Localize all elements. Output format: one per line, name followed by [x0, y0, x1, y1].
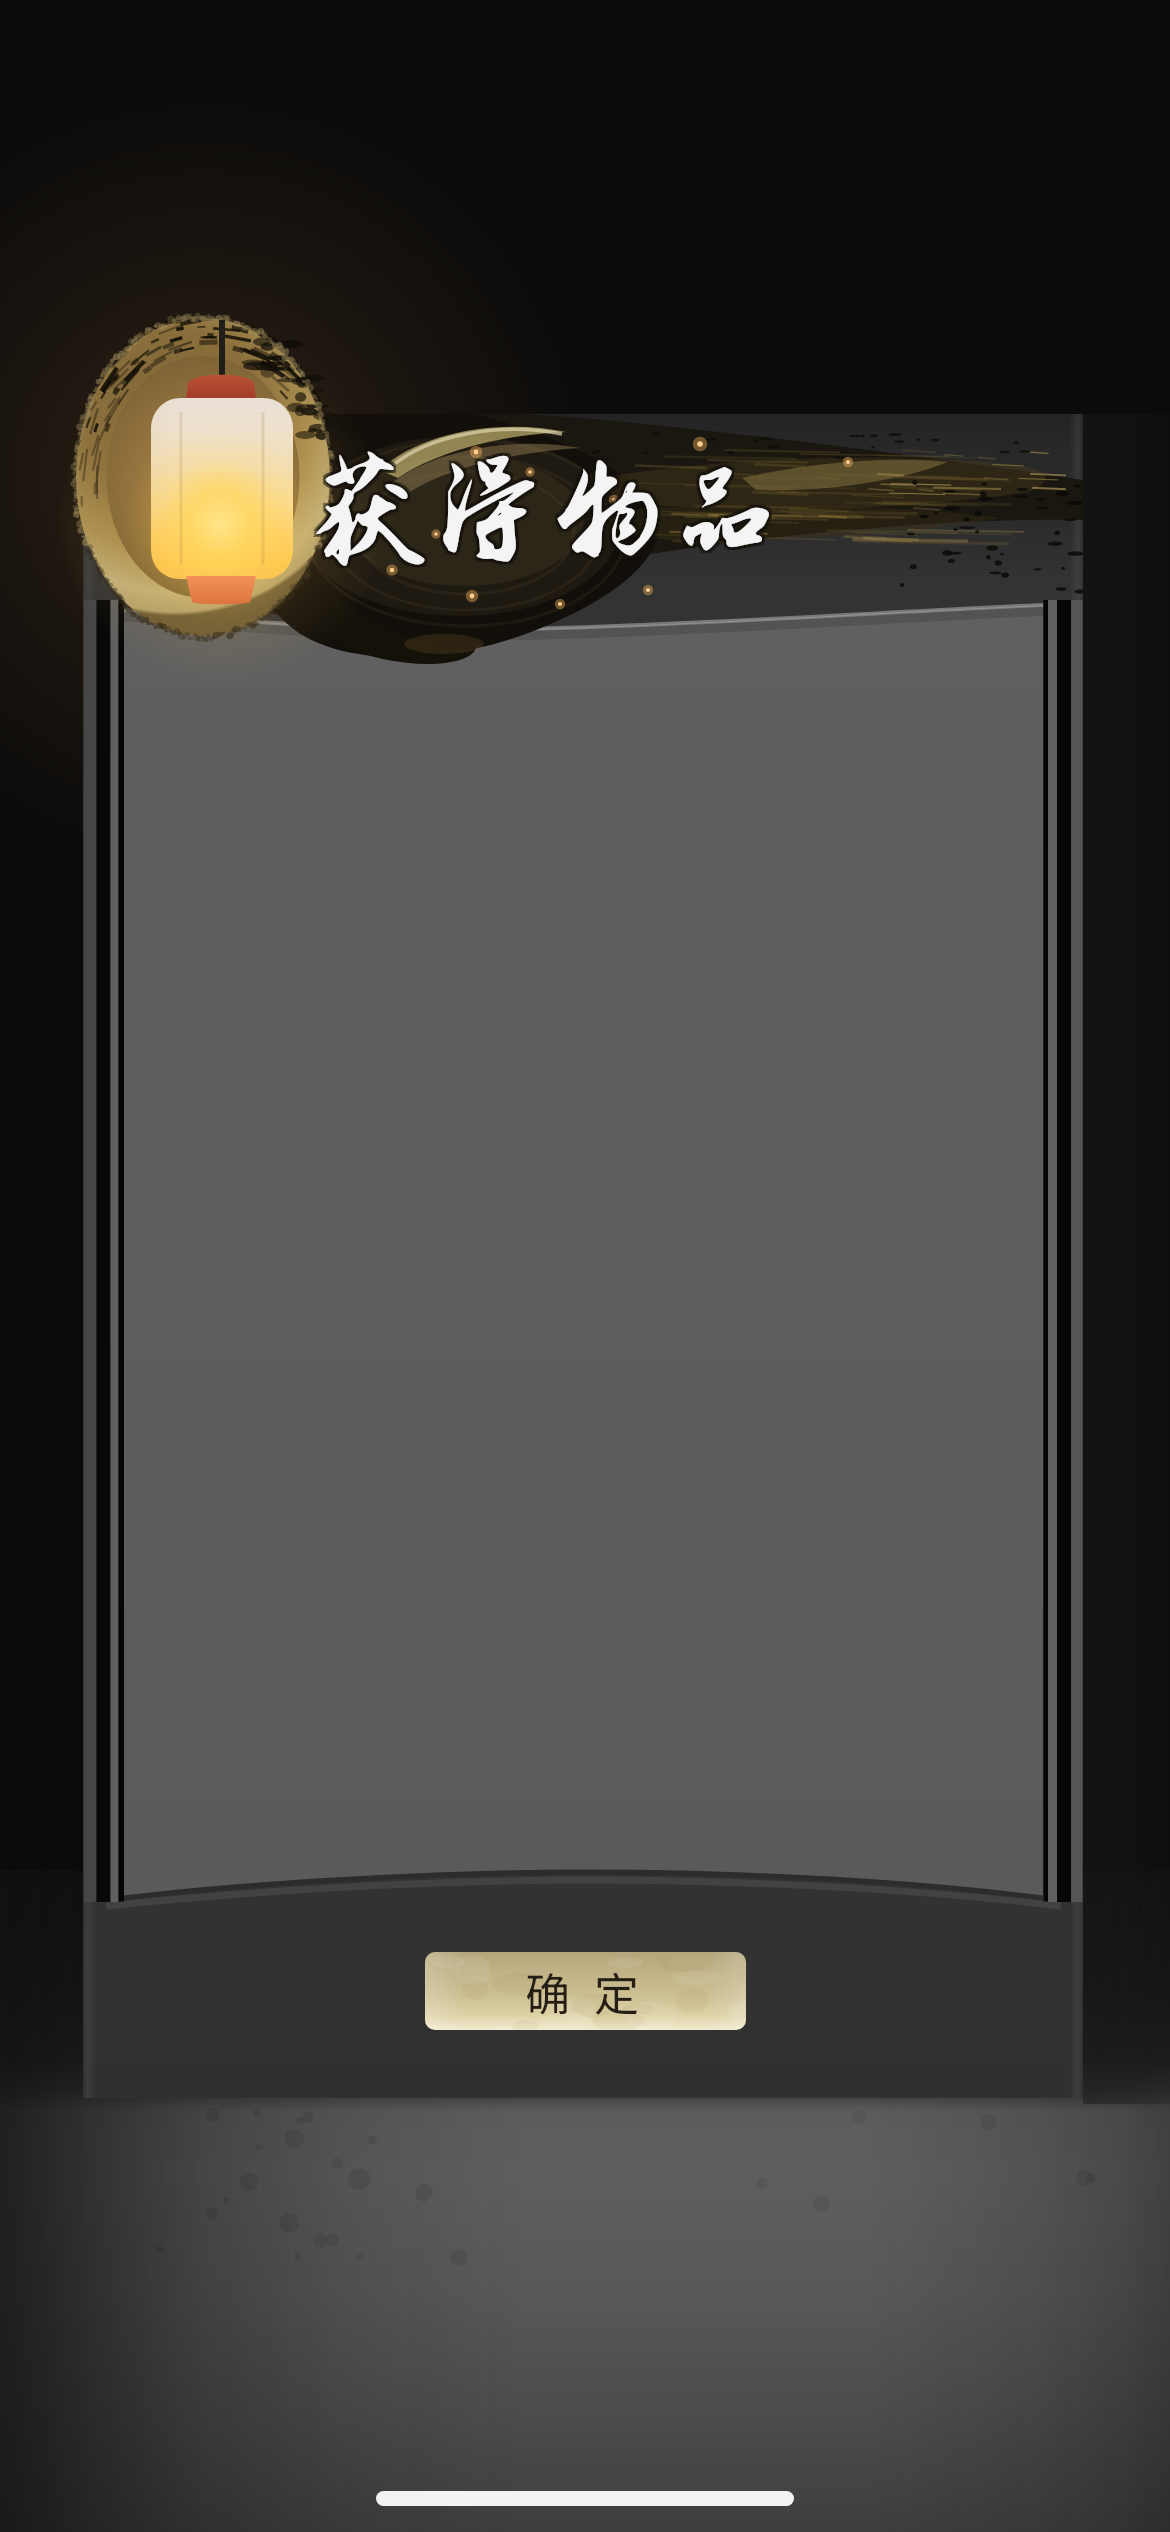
staticText: 获得物品 — [307, 447, 782, 581]
staticText: 确 定 — [525, 1959, 647, 2024]
staticText: 获得物品 — [310, 441, 785, 575]
staticText: 获得物品 — [310, 444, 785, 578]
staticText: 获得物品 — [307, 441, 782, 575]
staticText: 获得物品 — [313, 444, 788, 578]
other: Home indicator — [376, 2491, 794, 2506]
staticText: 获得物品 — [313, 441, 788, 575]
staticText: 获得物品 — [313, 447, 788, 581]
staticText: 获得物品 — [307, 444, 782, 578]
button[interactable]: 确 定 — [425, 1952, 746, 2030]
staticText: 获得物品 — [310, 447, 785, 581]
